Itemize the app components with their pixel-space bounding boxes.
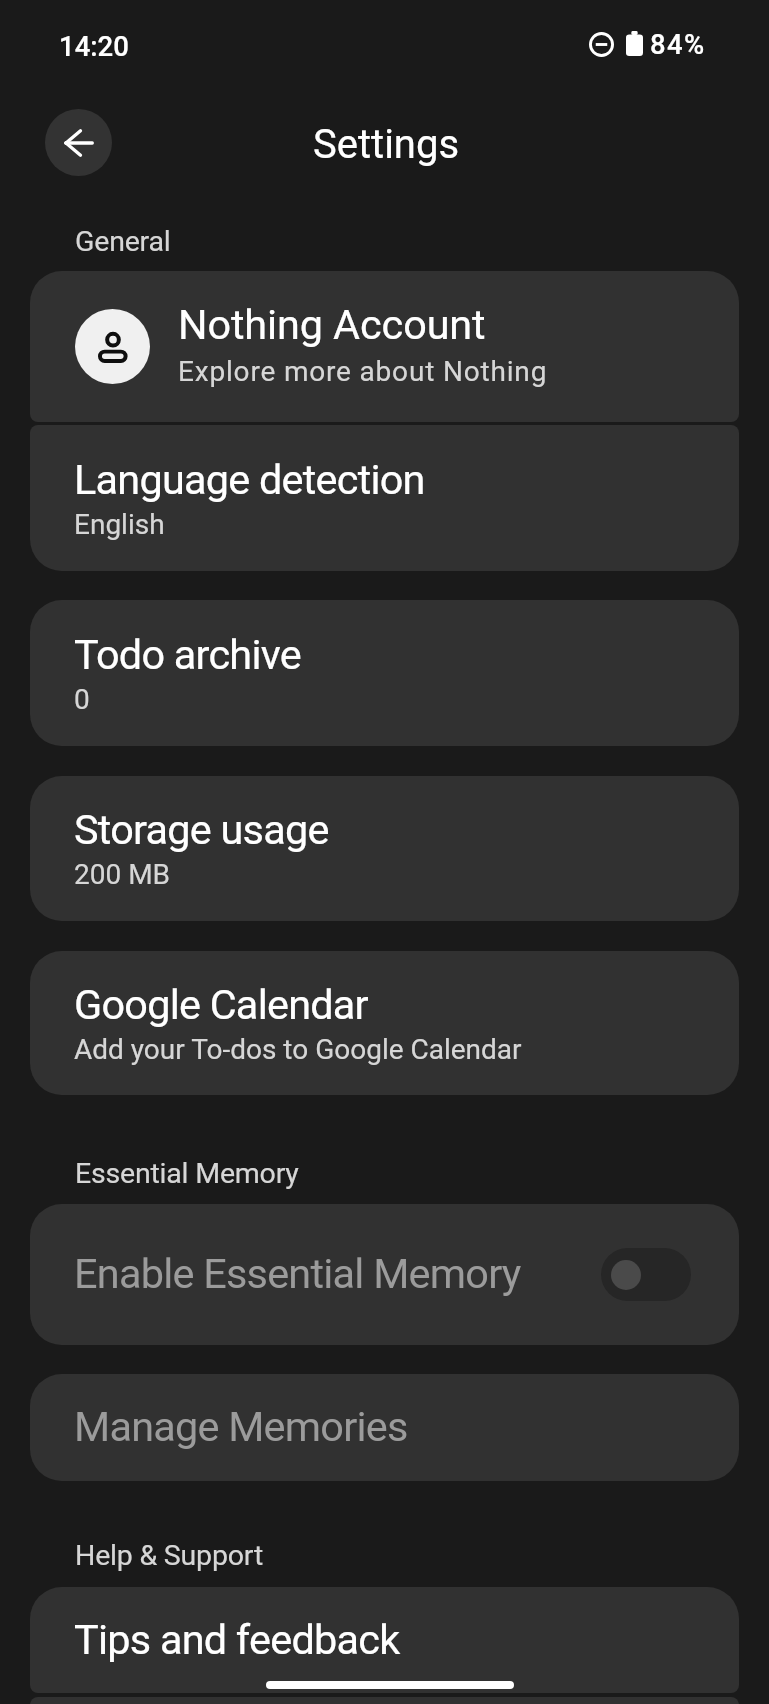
staticText: Todo archive: [74, 631, 301, 680]
button[interactable]: Google Calendar: [30, 951, 739, 1095]
staticText: Tips and feedback: [74, 1616, 400, 1665]
staticText: Language detection: [74, 456, 425, 505]
staticText: Help & Support: [75, 1539, 264, 1572]
button[interactable]: Back: [45, 109, 112, 176]
staticText: English: [74, 508, 165, 541]
staticText: Storage usage: [74, 806, 329, 855]
staticText: Nothing Account: [178, 301, 486, 350]
button[interactable]: Storage usage: [30, 776, 739, 921]
button[interactable]: Tips and feedback: [30, 1587, 739, 1693]
staticText: Settings: [313, 121, 460, 168]
staticText: General: [75, 225, 171, 258]
staticText: Google Calendar: [74, 981, 368, 1030]
staticText: 200 MB: [74, 858, 171, 891]
staticText: Add your To-dos to Google Calendar: [74, 1033, 522, 1066]
button[interactable]: Todo archive: [30, 600, 739, 746]
button[interactable]: Enable Essential Memory: [30, 1204, 739, 1345]
staticText: Manage Memories: [74, 1403, 408, 1452]
button[interactable]: Nothing Account: [30, 271, 739, 422]
staticText: Enable Essential Memory: [74, 1250, 601, 1299]
staticText: 14:20: [59, 30, 129, 62]
staticText: 0: [74, 683, 90, 716]
staticText: Essential Memory: [75, 1157, 299, 1190]
button[interactable]: Manage Memories: [30, 1374, 739, 1481]
staticText: 84%: [650, 28, 706, 60]
staticText: Explore more about Nothing: [178, 355, 548, 388]
button[interactable]: Language detection: [30, 425, 739, 571]
